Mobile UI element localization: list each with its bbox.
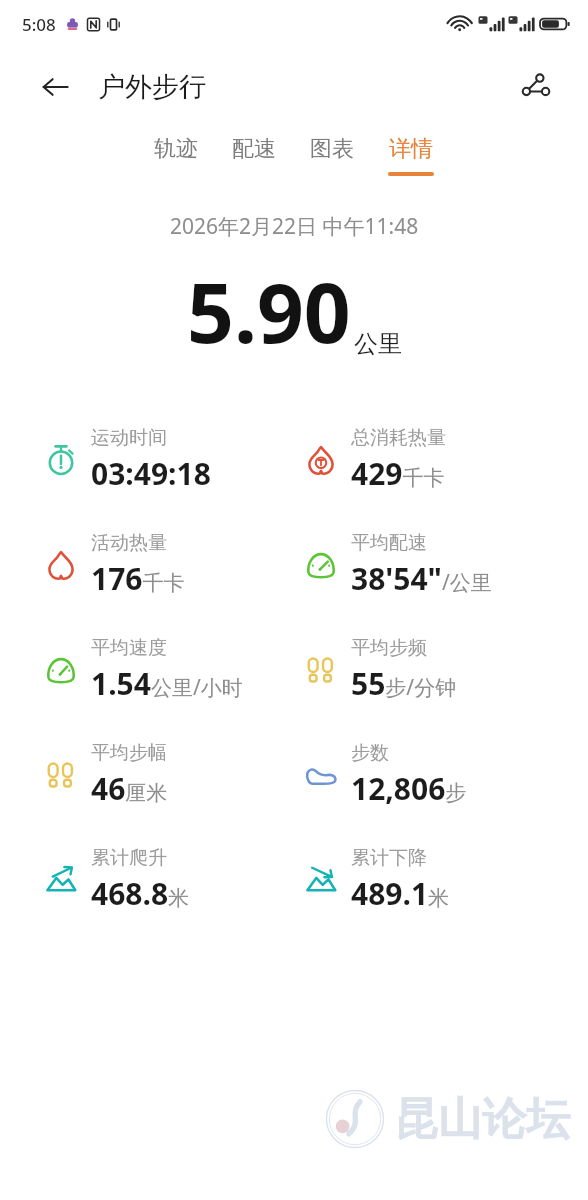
staticText: 配速 <box>232 135 276 163</box>
staticText: 活动热量 <box>91 531 167 555</box>
staticText: 图表 <box>310 135 354 163</box>
staticText: 12,806步 <box>351 768 467 809</box>
staticText: 累计下降 <box>351 846 427 870</box>
staticText: 轨迹 <box>154 135 198 163</box>
button[interactable]: 详情 <box>371 126 451 188</box>
staticText: 429千卡 <box>351 453 445 494</box>
staticText: 489.1米 <box>351 873 450 914</box>
staticText: 详情 <box>389 135 433 163</box>
staticText: 2026年2月22日 中午11:48 <box>170 212 419 241</box>
button[interactable]: 累计爬升 <box>44 827 294 932</box>
staticText: 55步/分钟 <box>351 663 457 704</box>
staticText: 累计爬升 <box>91 846 167 870</box>
button[interactable]: 步数 <box>304 722 588 827</box>
staticText: 1.54公里/小时 <box>91 663 243 704</box>
staticText: 38'54"/公里 <box>351 558 492 599</box>
button[interactable]: 平均速度 <box>44 617 294 722</box>
staticText: 03:49:18 <box>91 453 211 494</box>
button[interactable]: 运动时间 <box>44 407 294 512</box>
button[interactable]: 活动热量 <box>44 512 294 617</box>
staticText: 平均步幅 <box>91 741 167 765</box>
button[interactable]: 平均步幅 <box>44 722 294 827</box>
staticText: 步数 <box>351 741 389 765</box>
staticText: 总消耗热量 <box>351 426 446 450</box>
staticText: 平均配速 <box>351 531 427 555</box>
button[interactable]: 图表 <box>293 126 371 188</box>
button[interactable]: 配速 <box>215 126 293 188</box>
staticText: 5.90 <box>187 255 351 367</box>
button[interactable]: Share <box>514 65 558 109</box>
staticText: 5:08 <box>22 13 56 36</box>
button[interactable]: 平均配速 <box>304 512 588 617</box>
staticText: 公里 <box>354 329 402 359</box>
staticText: 平均步频 <box>351 636 427 660</box>
button[interactable]: 轨迹 <box>137 126 215 188</box>
staticText: 468.8米 <box>91 873 190 914</box>
staticText: 运动时间 <box>91 426 167 450</box>
staticText: 平均速度 <box>91 636 167 660</box>
staticText: 户外步行 <box>98 70 206 104</box>
button[interactable]: Back <box>34 66 76 108</box>
button[interactable]: 总消耗热量 <box>304 407 588 512</box>
button[interactable]: 累计下降 <box>304 827 588 932</box>
button[interactable]: 平均步频 <box>304 617 588 722</box>
staticText: 昆山论坛 <box>394 1092 570 1147</box>
staticText: 176千卡 <box>91 558 185 599</box>
staticText: 46厘米 <box>91 768 168 809</box>
